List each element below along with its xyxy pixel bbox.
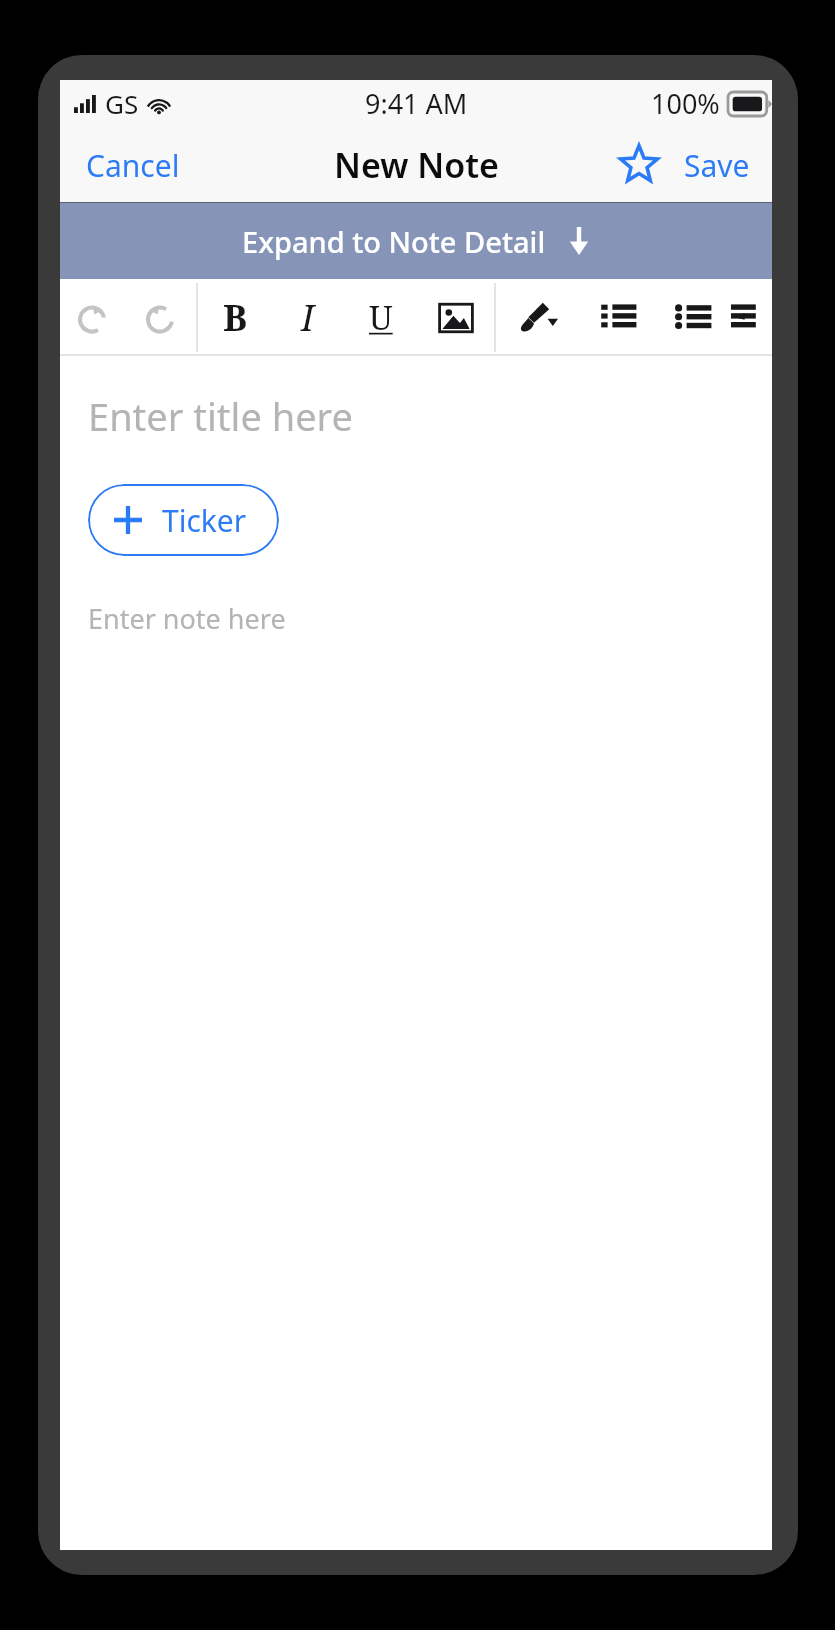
button[interactable]: Insert image (418, 279, 494, 356)
staticText: GS (105, 86, 139, 121)
staticText: Enter title here (88, 390, 353, 442)
button[interactable]: Favorite (604, 127, 674, 203)
button[interactable]: Bold (198, 279, 272, 356)
button[interactable]: Undo (60, 279, 124, 356)
staticText: I (301, 293, 315, 342)
staticText: Ticker (162, 500, 247, 541)
staticText: 9:41 AM (365, 85, 468, 122)
button[interactable]: Brush color (496, 279, 580, 356)
staticText: B (223, 293, 248, 342)
staticText: Save (684, 145, 750, 186)
button[interactable]: Underline (344, 279, 418, 356)
staticText: New Note (334, 142, 499, 188)
button[interactable]: Save (674, 127, 772, 203)
staticText: 100% (651, 85, 720, 122)
staticText: Expand to Note Detail (242, 222, 546, 261)
staticText: Enter note here (88, 600, 286, 637)
button[interactable]: Bulleted list (656, 279, 730, 356)
staticText: Cancel (86, 145, 180, 186)
button[interactable]: Expand to Note Detail (60, 203, 772, 279)
button[interactable]: Italic (272, 279, 344, 356)
button[interactable]: Redo (124, 279, 196, 356)
button[interactable]: Ticker (88, 484, 279, 556)
button[interactable]: Cancel (60, 127, 206, 203)
staticText: U (369, 295, 393, 340)
button[interactable]: Indent (730, 279, 772, 356)
button[interactable]: Numbered list (580, 279, 656, 356)
